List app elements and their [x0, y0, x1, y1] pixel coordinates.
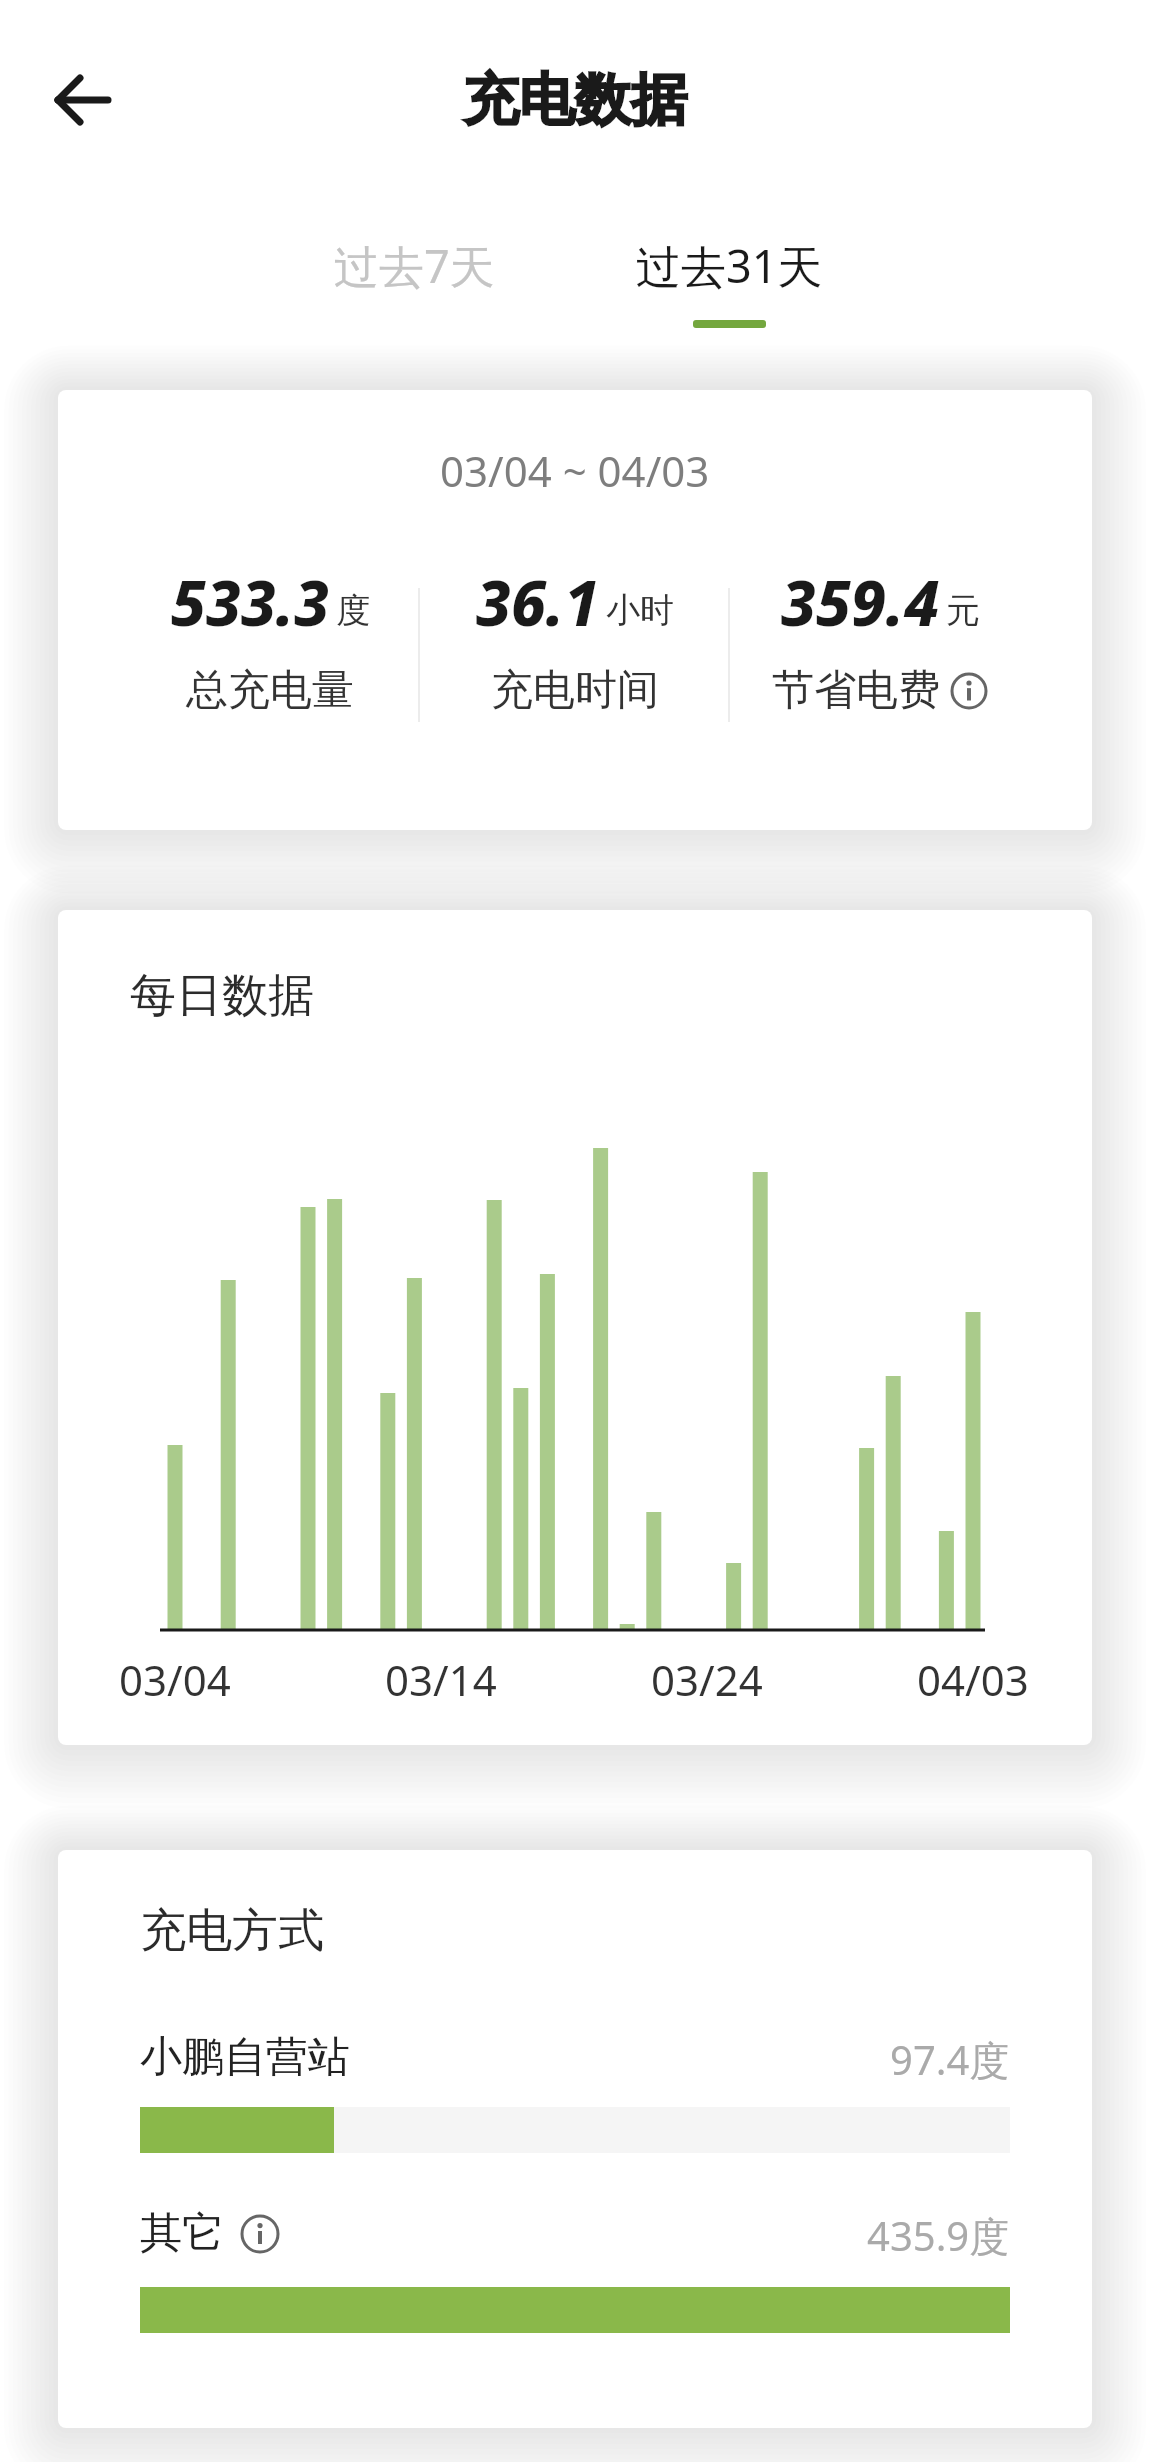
staticText: 度: [336, 589, 370, 632]
button[interactable]: [40, 58, 124, 142]
staticText: 总充电量: [186, 664, 354, 717]
staticText: 小时: [606, 589, 674, 632]
staticText: 03/24: [651, 1651, 763, 1708]
staticText: 03/04: [119, 1651, 231, 1708]
staticText: 03/14: [385, 1651, 497, 1708]
staticText: 每日数据: [130, 967, 314, 1025]
staticText: 过去7天: [334, 235, 495, 296]
staticText: 97.4度: [890, 2032, 1010, 2084]
staticText: 过去31天: [636, 235, 823, 296]
staticText: 充电方式: [140, 1902, 324, 1960]
button[interactable]: 过去7天: [294, 225, 534, 305]
staticText: 36.1: [476, 560, 600, 640]
staticText: 充电数据: [463, 65, 687, 136]
staticText: 小鹏自营站: [140, 2031, 350, 2084]
staticText: 节省电费: [772, 664, 940, 717]
staticText: 其它: [140, 2207, 224, 2260]
button[interactable]: 过去31天: [609, 225, 849, 305]
staticText: 435.9度: [867, 2208, 1010, 2260]
staticText: 03/04 ~ 04/03: [440, 442, 710, 499]
staticText: 充电时间: [491, 664, 659, 717]
staticText: 元: [946, 589, 980, 632]
staticText: 359.4: [781, 560, 940, 640]
staticText: 533.3: [171, 560, 330, 640]
staticText: 04/03: [917, 1651, 1029, 1708]
button[interactable]: [140, 2107, 1010, 2153]
